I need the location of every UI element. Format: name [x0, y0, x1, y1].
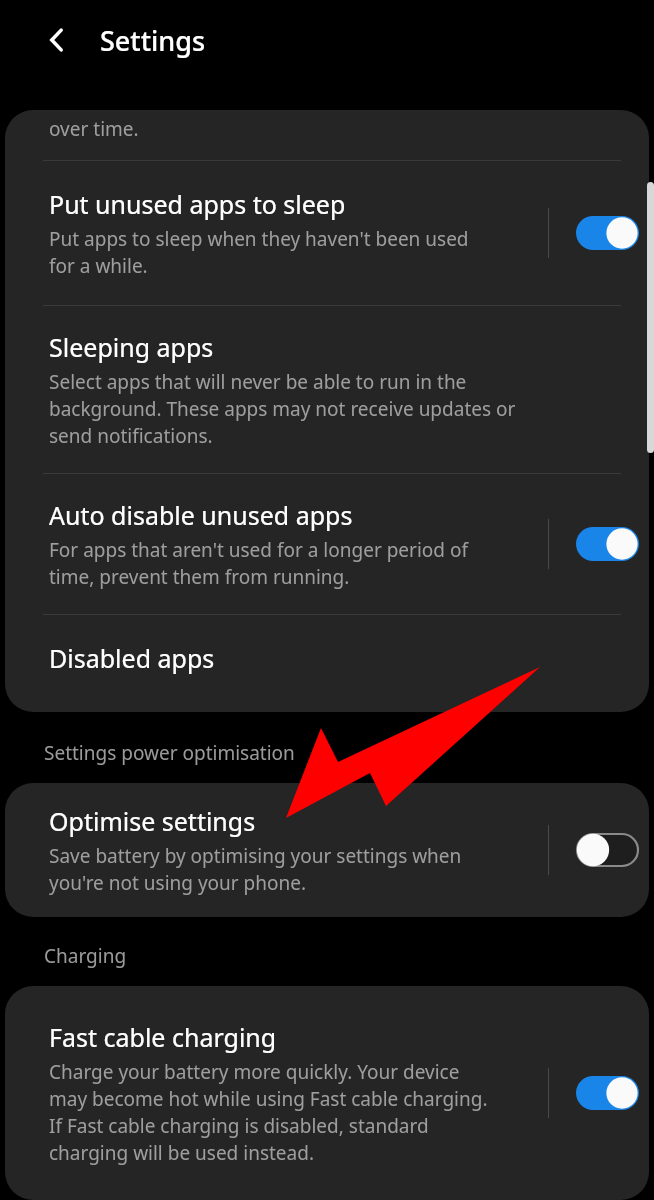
staticText: Save battery by optimising your settings…: [49, 843, 462, 896]
staticText: over time.: [49, 116, 139, 142]
button[interactable]: Fast cable charging: [5, 1020, 649, 1166]
staticText: For apps that aren't used for a longer p…: [49, 537, 468, 590]
staticText: Optimise settings: [49, 804, 256, 838]
button[interactable]: Toggle on: [576, 1075, 639, 1111]
staticText: Put apps to sleep when they haven't been…: [49, 226, 469, 279]
button[interactable]: Auto disable unused apps: [5, 474, 649, 614]
button[interactable]: Toggle on: [576, 526, 639, 562]
staticText: Put unused apps to sleep: [49, 187, 346, 221]
staticText: Charging: [44, 943, 127, 969]
staticText: Sleeping apps: [49, 330, 214, 364]
staticText: Settings power optimisation: [44, 740, 295, 766]
staticText: Settings: [100, 22, 206, 59]
button[interactable]: over time.: [5, 110, 649, 160]
button[interactable]: Optimise settings: [5, 804, 649, 896]
button[interactable]: Toggle on: [576, 215, 639, 251]
button[interactable]: Put unused apps to sleep: [5, 161, 649, 305]
staticText: Auto disable unused apps: [49, 498, 353, 532]
staticText: Select apps that will never be able to r…: [49, 369, 516, 449]
button[interactable]: Disabled apps: [5, 615, 649, 701]
button[interactable]: Sleeping apps: [5, 306, 649, 473]
staticText: Charge your battery more quickly. Your d…: [49, 1059, 488, 1166]
button[interactable]: Toggle off: [576, 832, 639, 868]
button[interactable]: Back: [31, 14, 83, 66]
staticText: Fast cable charging: [49, 1020, 277, 1054]
staticText: Disabled apps: [49, 641, 215, 675]
